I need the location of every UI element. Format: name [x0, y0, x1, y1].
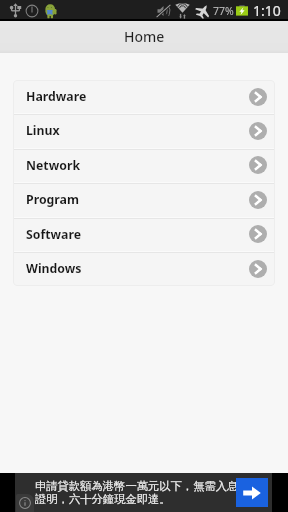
staticText: 1:10	[253, 1, 281, 20]
button[interactable]: Hardware	[13, 80, 275, 113]
staticText: Home	[124, 27, 165, 46]
staticText: Hardware	[26, 88, 87, 105]
button[interactable]: Ad information	[16, 494, 34, 512]
staticText: Network	[26, 157, 81, 174]
staticText: Windows	[26, 260, 82, 277]
staticText: 77%	[213, 4, 234, 18]
button[interactable]: Windows	[13, 251, 275, 286]
staticText: Software	[26, 226, 82, 243]
staticText: 申請貸款額為港幣一萬元以下，無需入息 證明，六十分鐘現金即達。	[35, 479, 239, 506]
staticText: Program	[26, 191, 79, 208]
button[interactable]: Software	[13, 217, 275, 251]
staticText: Linux	[26, 122, 60, 139]
button[interactable]: Network	[13, 148, 275, 182]
button[interactable]: Linux	[13, 113, 275, 148]
button[interactable]: Program	[13, 182, 275, 217]
button[interactable]: Open advertisement	[236, 478, 268, 507]
